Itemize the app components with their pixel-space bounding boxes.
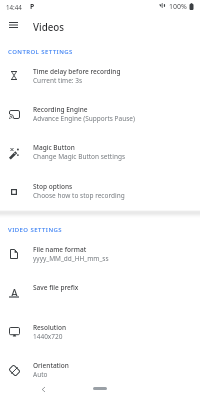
staticText: Orientation <box>33 361 69 370</box>
button[interactable]: File name format <box>0 231 200 269</box>
button[interactable]: Resolution <box>0 309 200 347</box>
button[interactable]: Magic Button <box>0 129 200 167</box>
staticText: 1440x720 <box>33 332 63 341</box>
staticText: yyyy_MM_dd_HH_mm_ss <box>33 254 109 263</box>
staticText: Resolution <box>33 323 67 332</box>
staticText: 100% <box>169 2 187 12</box>
staticText: 14:44 <box>6 3 22 11</box>
staticText: Recording Engine <box>33 105 88 114</box>
staticText: File name format <box>33 245 87 254</box>
button[interactable]: Time delay before recording <box>0 53 200 91</box>
staticText: Change Magic Button settings <box>33 152 126 161</box>
button[interactable]: Open navigation menu <box>1 13 25 37</box>
staticText: Current time: 3s <box>33 76 83 85</box>
button[interactable]: Recording Engine <box>0 91 200 129</box>
staticText: Save file prefix <box>33 283 79 292</box>
staticText: Stop options <box>33 182 73 191</box>
button[interactable]: Orientation <box>0 347 200 385</box>
staticText: VIDEO SETTINGS <box>8 226 63 234</box>
staticText: Magic Button <box>33 143 75 152</box>
staticText: P <box>30 2 35 11</box>
staticText: A <box>11 286 18 297</box>
staticText: Choose how to stop recording <box>33 191 125 200</box>
staticText: CONTROL SETTINGS <box>8 48 73 56</box>
staticText: Auto <box>33 370 48 379</box>
button[interactable]: Back <box>36 382 50 396</box>
staticText: Videos <box>33 21 65 34</box>
button[interactable]: A <box>0 269 200 307</box>
staticText: Advance Engine (Supports Pause) <box>33 114 135 123</box>
button[interactable]: Stop options <box>0 168 200 206</box>
staticText: Time delay before recording <box>33 67 121 76</box>
